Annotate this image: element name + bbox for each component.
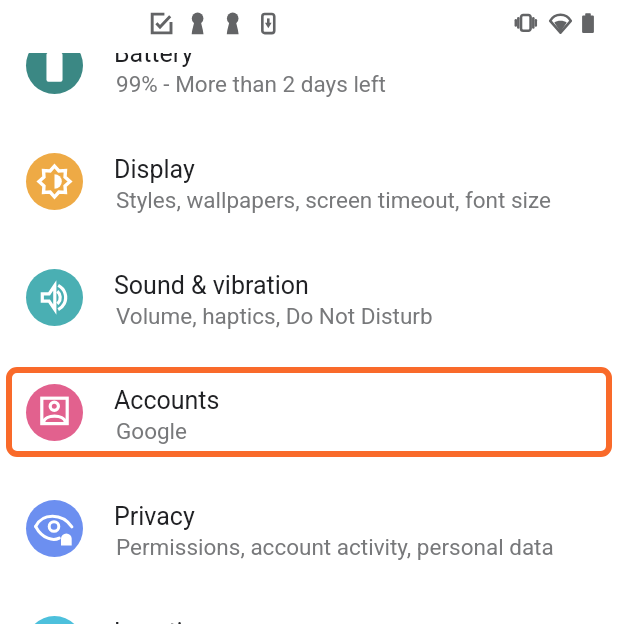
button[interactable]: Accounts [0,355,624,471]
staticText: Sound & vibration [114,271,309,300]
staticText: Styles, wallpapers, screen timeout, font… [116,187,551,213]
staticText: Volume, haptics, Do Not Disturb [116,303,433,329]
button[interactable]: Sound & vibration [0,240,624,356]
button[interactable]: Location [0,587,624,624]
button[interactable]: Display [0,124,624,240]
button[interactable]: Privacy [0,471,624,587]
staticText: 99% - More than 2 days left [116,71,386,97]
button[interactable]: Accounts, Google [6,367,612,457]
staticText: Battery [114,53,194,68]
button[interactable]: Battery [0,53,624,124]
staticText: Google [116,418,188,444]
staticText: Privacy [114,502,195,531]
staticText: Display [114,155,195,184]
staticText: Permissions, account activity, personal … [116,534,554,560]
staticText: Location [114,618,211,624]
staticText: Accounts [114,386,220,415]
